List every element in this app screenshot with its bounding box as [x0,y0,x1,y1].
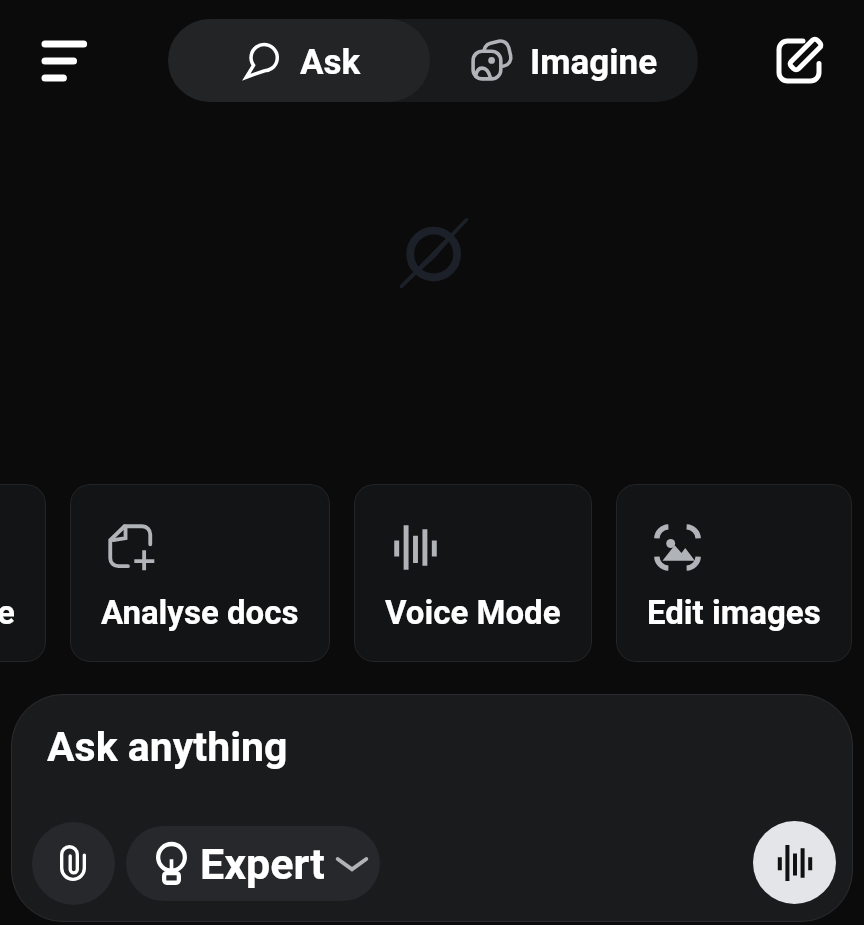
button[interactable]: Expert [126,826,380,901]
staticText: Ask [300,42,361,83]
button[interactable]: Voice Mode [354,484,592,662]
staticText: Edit images [647,593,821,632]
staticText: Expert [200,839,325,889]
button[interactable]: Create image [0,484,46,662]
button[interactable]: Voice input [753,821,836,904]
staticText: Imagine [530,42,658,83]
button[interactable]: Analyse docs [70,484,330,662]
button[interactable]: Imagine [430,19,698,102]
button[interactable]: New chat [762,24,836,98]
button[interactable]: Menu [31,25,103,97]
staticText: Voice Mode [385,593,561,632]
staticText: Create image [0,593,15,632]
staticText: Ask anything [47,723,288,771]
button[interactable]: Ask [168,19,430,102]
staticText: Analyse docs [101,593,299,632]
button[interactable]: Edit images [616,484,852,662]
button[interactable]: Attach file [32,822,115,905]
